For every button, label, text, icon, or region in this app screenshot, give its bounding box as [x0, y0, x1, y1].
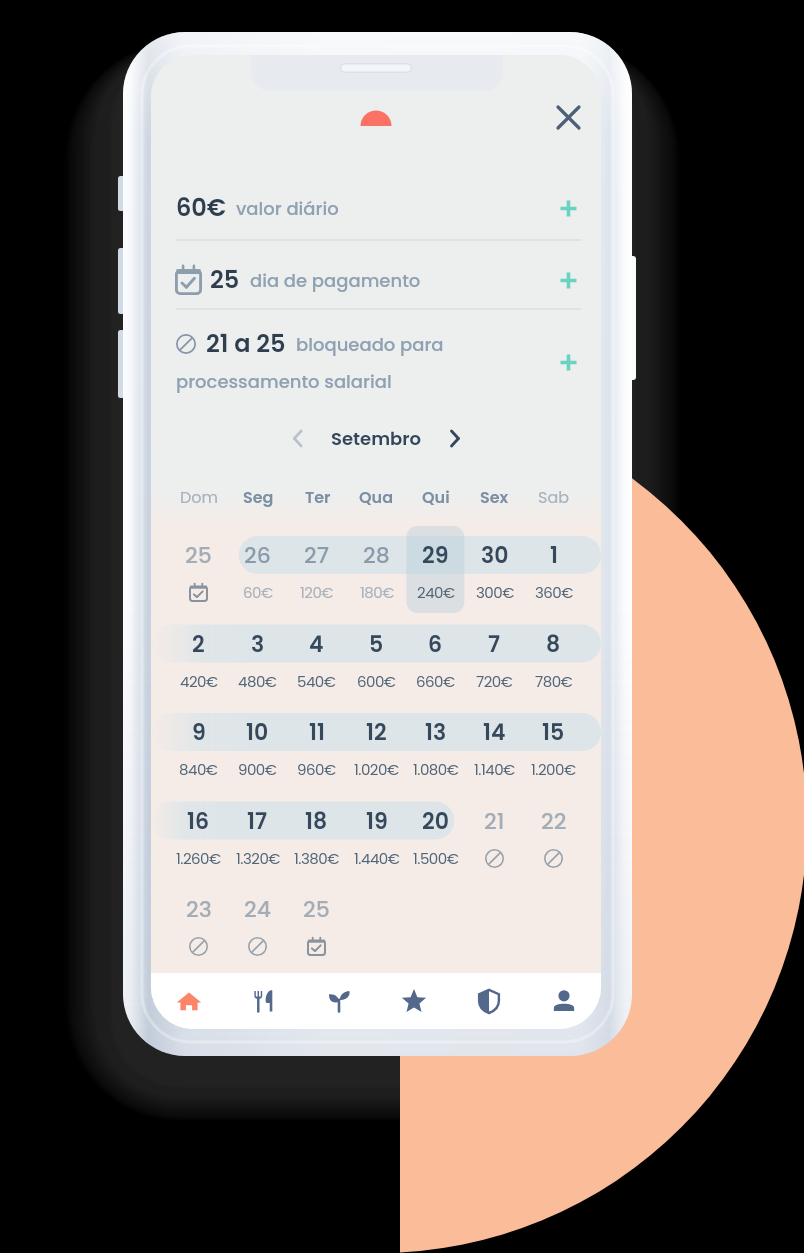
button[interactable]: Add [550, 262, 586, 298]
staticText: processamento salarial [176, 369, 392, 394]
staticText: 25 [185, 540, 212, 571]
button[interactable]: 8 [524, 622, 583, 666]
staticText: 240€ [417, 582, 455, 603]
staticText: 60€ [243, 582, 273, 603]
button[interactable]: 60€ [171, 180, 586, 236]
staticText: 1.200€ [531, 759, 576, 780]
staticText: 660€ [416, 671, 455, 692]
button[interactable]: 27 [287, 533, 346, 577]
staticText: 960€ [297, 759, 336, 780]
button[interactable]: 28 [347, 533, 406, 577]
button[interactable]: 11 [287, 710, 346, 754]
staticText: 23 [186, 894, 212, 925]
staticText: 25 [303, 894, 330, 925]
button[interactable]: Previous month [279, 419, 317, 457]
button[interactable]: 21 a 25 [171, 324, 586, 400]
staticText: 8 [546, 629, 561, 660]
staticText: 720€ [476, 671, 513, 692]
staticText: 13 [425, 717, 447, 748]
button[interactable]: 2 [169, 622, 228, 666]
button[interactable]: Home [151, 973, 226, 1029]
button[interactable]: Close [548, 97, 588, 137]
staticText: Sex [480, 486, 509, 508]
staticText: 19 [366, 806, 388, 837]
staticText: 600€ [357, 671, 396, 692]
button[interactable]: Add [550, 190, 586, 226]
button[interactable]: 20 [406, 799, 465, 843]
staticText: 1.080€ [413, 759, 459, 780]
button[interactable]: 4 [287, 622, 346, 666]
button[interactable]: Add [550, 344, 586, 380]
staticText: 1.320€ [236, 848, 280, 869]
staticText: 1 [550, 540, 558, 571]
staticText: 2 [192, 629, 205, 660]
staticText: 420€ [180, 671, 218, 692]
button[interactable]: 12 [347, 710, 406, 754]
button[interactable]: 1 [524, 533, 583, 577]
staticText: 15 [542, 717, 565, 748]
button[interactable]: 29 [406, 533, 465, 577]
staticText: 840€ [179, 759, 218, 780]
button[interactable]: 10 [228, 710, 287, 754]
button[interactable]: 25 [169, 533, 228, 577]
staticText: Ter [305, 486, 331, 508]
staticText: 1.500€ [413, 848, 459, 869]
button[interactable]: 23 [169, 887, 228, 931]
staticText: 10 [246, 717, 269, 748]
button[interactable]: Next month [435, 419, 473, 457]
button[interactable]: 17 [228, 799, 287, 843]
staticText: 21 a 25 [206, 327, 286, 361]
button[interactable]: 25 [287, 887, 346, 931]
button[interactable]: 22 [524, 799, 583, 843]
button[interactable]: 14 [465, 710, 524, 754]
staticText: 24 [244, 894, 271, 925]
button[interactable]: Insurance [451, 973, 526, 1029]
staticText: 14 [483, 717, 506, 748]
button[interactable]: 24 [228, 887, 287, 931]
button[interactable]: 30 [465, 533, 524, 577]
staticText: 360€ [535, 582, 573, 603]
staticText: 1.140€ [474, 759, 515, 780]
button[interactable]: 19 [347, 799, 406, 843]
staticText: Qua [359, 486, 394, 508]
staticText: 22 [541, 806, 567, 837]
staticText: 1.380€ [294, 848, 339, 869]
staticText: Setembro [331, 426, 421, 451]
staticText: 300€ [476, 582, 514, 603]
staticText: 1.020€ [354, 759, 399, 780]
button[interactable]: 26 [228, 533, 287, 577]
button[interactable]: Favourites [376, 973, 451, 1029]
staticText: 27 [304, 540, 330, 571]
staticText: dia de pagamento [250, 268, 421, 293]
button[interactable]: 7 [465, 622, 524, 666]
button[interactable]: Wellness [301, 973, 376, 1029]
button[interactable]: Profile [526, 973, 601, 1029]
button[interactable]: Meals [226, 973, 301, 1029]
staticText: 17 [247, 806, 268, 837]
button[interactable]: 16 [169, 799, 228, 843]
button[interactable]: 13 [406, 710, 465, 754]
button[interactable]: 6 [406, 622, 465, 666]
staticText: 12 [366, 717, 387, 748]
staticText: 26 [244, 540, 271, 571]
staticText: 29 [422, 540, 449, 571]
button[interactable]: 25 [171, 252, 586, 308]
staticText: 780€ [535, 671, 573, 692]
staticText: 16 [187, 806, 210, 837]
staticText: Qui [422, 486, 450, 508]
staticText: 21 [484, 806, 505, 837]
staticText: 6 [428, 629, 443, 660]
staticText: 5 [369, 629, 384, 660]
button[interactable]: 3 [228, 622, 287, 666]
button[interactable]: 21 [465, 799, 524, 843]
staticText: 540€ [297, 671, 336, 692]
button[interactable]: 9 [169, 710, 228, 754]
staticText: 900€ [238, 759, 277, 780]
staticText: 60€ [176, 191, 227, 225]
button[interactable]: 15 [524, 710, 583, 754]
staticText: 180€ [360, 582, 394, 603]
staticText: 11 [309, 717, 325, 748]
staticText: 9 [192, 717, 206, 748]
button[interactable]: 5 [347, 622, 406, 666]
button[interactable]: 18 [287, 799, 346, 843]
